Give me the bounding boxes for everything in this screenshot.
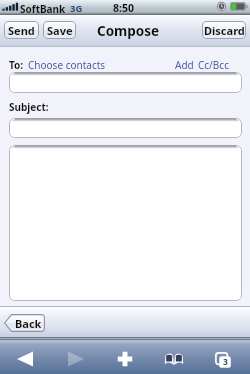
button[interactable]: Save: [43, 21, 76, 39]
staticText: Back: [15, 316, 42, 331]
button[interactable]: Back: [4, 314, 45, 332]
staticText: SoftBank: [20, 2, 66, 16]
staticText: 3G: [70, 2, 83, 15]
staticText: Subject:: [9, 100, 49, 114]
button[interactable]: Tabs: [203, 343, 243, 374]
button[interactable]: Discard: [202, 21, 246, 39]
staticText: Add: [175, 58, 194, 72]
staticText: Discard: [204, 23, 245, 38]
button[interactable]: Forward: [56, 343, 96, 374]
staticText: Compose: [97, 22, 160, 40]
button[interactable]: [9, 145, 242, 301]
button[interactable]: Send: [4, 21, 39, 39]
button[interactable]: [9, 72, 242, 93]
button[interactable]: New page: [105, 343, 145, 374]
staticText: Save: [47, 23, 73, 38]
button[interactable]: Add: [175, 58, 229, 72]
button[interactable]: Choose contacts: [28, 58, 106, 72]
button[interactable]: Back: [5, 343, 45, 374]
staticText: Send: [8, 23, 35, 38]
staticText: Cc/Bcc: [198, 58, 229, 72]
button[interactable]: [9, 118, 242, 138]
button[interactable]: Bookmarks: [154, 343, 194, 374]
staticText: To:: [9, 58, 24, 72]
staticText: 3: [223, 356, 228, 368]
staticText: 8:50: [113, 1, 134, 15]
